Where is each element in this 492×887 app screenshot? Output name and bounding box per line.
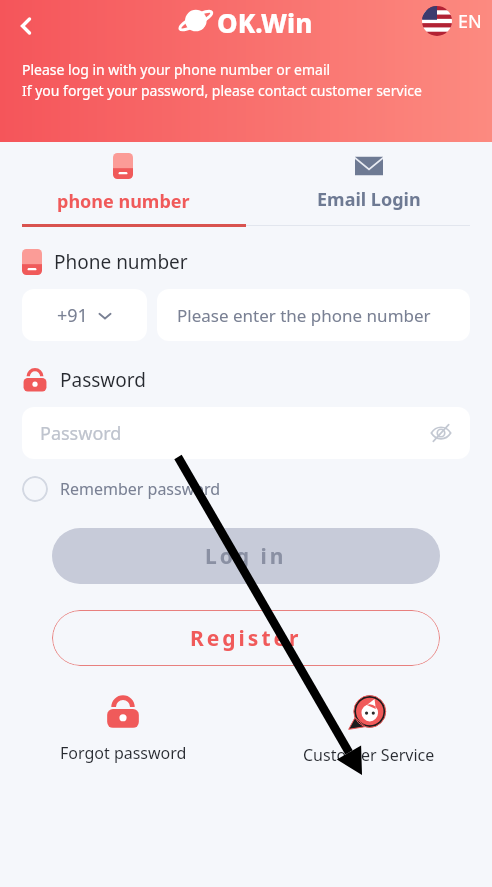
staticText: Password xyxy=(60,367,146,393)
staticText: Password xyxy=(40,421,122,446)
staticText: Phone number xyxy=(54,249,188,275)
staticText: Please log in with your phone number or … xyxy=(22,60,331,79)
button[interactable]: Customer Service xyxy=(246,694,492,766)
button[interactable]: Password xyxy=(22,407,470,459)
staticText: Email Login xyxy=(317,187,421,212)
button[interactable]: Log in xyxy=(52,528,440,584)
button[interactable]: Back xyxy=(4,4,48,48)
button[interactable]: Show password xyxy=(426,418,456,448)
staticText: Please enter the phone number xyxy=(177,304,431,327)
staticText: If you forget your password, please cont… xyxy=(22,81,422,100)
button[interactable]: Forgot password xyxy=(0,694,246,764)
button[interactable]: phone number xyxy=(0,142,246,224)
button[interactable]: Register xyxy=(52,610,440,666)
staticText: OK.Win xyxy=(217,5,313,40)
button[interactable]: Remember password xyxy=(22,476,221,502)
staticText: EN xyxy=(458,9,482,34)
staticText: Remember password xyxy=(60,478,221,500)
staticText: Forgot password xyxy=(60,742,187,764)
staticText: +91 xyxy=(57,303,88,328)
button[interactable]: Email Login xyxy=(246,142,492,224)
staticText: Customer Service xyxy=(303,744,435,766)
button[interactable]: Please enter the phone number xyxy=(157,289,470,341)
staticText: Register xyxy=(190,624,302,653)
button[interactable]: EN xyxy=(422,6,482,36)
staticText: phone number xyxy=(57,189,190,214)
button[interactable]: +91 xyxy=(22,289,147,341)
staticText: Log in xyxy=(205,542,287,571)
